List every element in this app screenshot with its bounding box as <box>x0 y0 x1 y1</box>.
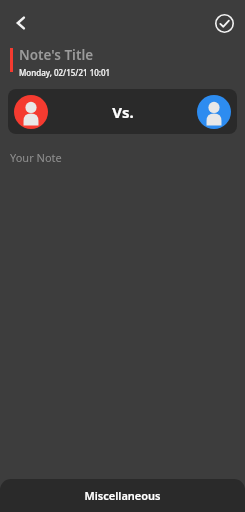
button[interactable]: Save note <box>208 7 240 39</box>
staticText: Your Note <box>10 150 62 165</box>
button[interactable]: Vs. <box>8 89 237 134</box>
staticText: Note's Title <box>19 46 94 64</box>
staticText: Miscellaneous <box>84 488 161 503</box>
staticText: Vs. <box>112 102 134 122</box>
button[interactable]: Miscellaneous <box>0 479 245 512</box>
button[interactable]: Back <box>4 6 38 40</box>
staticText: Monday, 02/15/21 10:01 <box>19 67 111 78</box>
